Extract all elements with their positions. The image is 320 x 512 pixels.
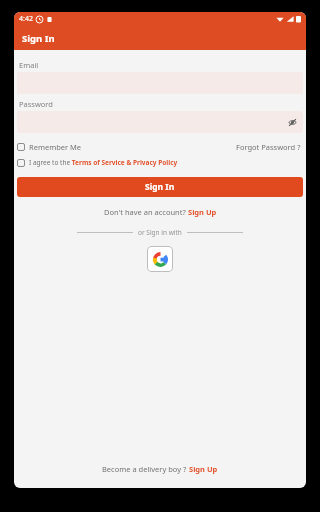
staticText: I agree to the Terms of Service & Privac… xyxy=(29,158,178,167)
other: Toggle password visibility xyxy=(288,118,297,127)
button[interactable]: Toggle password visibility xyxy=(17,111,303,133)
button[interactable]: Forgot Password ? xyxy=(234,140,303,154)
staticText: Forgot Password ? xyxy=(236,142,301,152)
staticText: Don't have an account? xyxy=(104,207,188,217)
button[interactable]: Sign in with Google xyxy=(147,246,173,272)
staticText: Sign Up xyxy=(189,464,218,474)
staticText: Become a delivery boy ? xyxy=(102,464,189,474)
button[interactable]: Don't have an account? xyxy=(102,205,219,219)
staticText: Sign In xyxy=(145,181,175,193)
staticText: or Sign in with xyxy=(138,228,182,237)
staticText: Email xyxy=(19,60,39,70)
staticText: 4:42 xyxy=(19,14,33,24)
button[interactable]: Sign In xyxy=(17,177,303,197)
staticText: Password xyxy=(19,99,53,109)
button[interactable]: Remember Me xyxy=(17,142,82,152)
staticText: Sign In xyxy=(22,32,55,45)
staticText: Remember Me xyxy=(29,142,82,152)
staticText: Sign Up xyxy=(188,207,217,217)
button[interactable]: Become a delivery boy ? xyxy=(98,460,222,478)
button[interactable]: I agree to the Terms of Service & Privac… xyxy=(17,158,178,167)
